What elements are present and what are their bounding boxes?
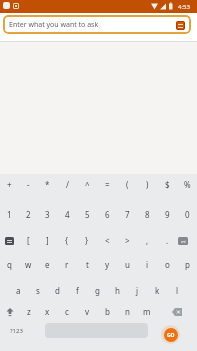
button[interactable]: < — [97, 230, 117, 251]
staticText: t — [86, 259, 89, 270]
button[interactable]: f — [67, 280, 87, 301]
button[interactable] — [0, 230, 19, 251]
staticText: [ — [27, 235, 30, 246]
button[interactable]: n — [117, 301, 137, 322]
button[interactable]: GO — [164, 328, 178, 342]
button[interactable]: 6 — [97, 204, 117, 225]
button[interactable]: q — [0, 254, 19, 275]
button[interactable] — [176, 21, 185, 30]
staticText: % — [184, 179, 191, 190]
button[interactable]: i — [137, 254, 157, 275]
button[interactable]: s — [28, 280, 47, 301]
staticText: * — [45, 179, 50, 190]
button[interactable]: ] — [38, 230, 57, 251]
button[interactable]: [ — [19, 230, 38, 251]
staticText: d — [55, 285, 60, 296]
button[interactable]: 4 — [57, 204, 77, 225]
button[interactable]: w — [19, 254, 38, 275]
button[interactable]: ) — [137, 174, 157, 195]
button[interactable]: m — [137, 301, 157, 322]
staticText: , — [146, 235, 149, 246]
button[interactable]: 9 — [157, 204, 177, 225]
button[interactable]: g — [87, 280, 107, 301]
button[interactable]: c — [57, 301, 77, 322]
button[interactable]: > — [117, 230, 137, 251]
staticText: ] — [46, 235, 49, 246]
button[interactable]: x — [38, 301, 57, 322]
staticText: h — [115, 285, 120, 296]
button[interactable]: d — [47, 280, 67, 301]
button[interactable]: = — [97, 174, 117, 195]
staticText: ) — [146, 179, 149, 190]
button[interactable]: =< — [177, 230, 197, 251]
button[interactable]: p — [177, 254, 197, 275]
button[interactable]: v — [77, 301, 97, 322]
staticText: i — [146, 259, 149, 270]
button[interactable]: b — [97, 301, 117, 322]
button[interactable]: r — [57, 254, 77, 275]
staticText: f — [76, 285, 79, 296]
button[interactable]: . — [157, 230, 177, 251]
staticText: 8 — [145, 209, 150, 220]
button[interactable]: 0 — [177, 204, 197, 225]
button[interactable]: ( — [117, 174, 137, 195]
button[interactable]: 8 — [137, 204, 157, 225]
staticText: 3 — [45, 209, 50, 220]
staticText: 4:53 — [178, 3, 190, 11]
staticText: q — [7, 259, 12, 270]
staticText: x — [45, 306, 50, 317]
staticText: + — [7, 179, 12, 190]
button[interactable]: y — [97, 254, 117, 275]
staticText: 0 — [185, 209, 190, 220]
staticText: = — [105, 179, 110, 190]
staticText: g — [95, 285, 100, 296]
staticText: y — [105, 259, 110, 270]
button[interactable]: } — [77, 230, 97, 251]
button[interactable]: l — [167, 280, 187, 301]
button[interactable]: , — [137, 230, 157, 251]
button[interactable]: t — [77, 254, 97, 275]
button[interactable]: Enter what you want to ask — [3, 15, 191, 34]
staticText: 4 — [65, 209, 70, 220]
button[interactable]: k — [147, 280, 167, 301]
button[interactable]: / — [57, 174, 77, 195]
staticText: - — [27, 179, 30, 190]
staticText: e — [45, 259, 50, 270]
staticText: 9 — [165, 209, 170, 220]
staticText: p — [185, 259, 190, 270]
button[interactable]: - — [19, 174, 38, 195]
button[interactable]: 3 — [38, 204, 57, 225]
staticText: 6 — [105, 209, 110, 220]
button[interactable]: 1 — [0, 204, 19, 225]
button[interactable]: j — [127, 280, 147, 301]
button[interactable]: 2 — [19, 204, 38, 225]
staticText: ^ — [85, 179, 90, 190]
staticText: < — [105, 235, 110, 246]
button[interactable]: $ — [157, 174, 177, 195]
staticText: w — [25, 259, 32, 270]
staticText: u — [125, 259, 130, 270]
staticText: o — [165, 259, 170, 270]
button[interactable]: e — [38, 254, 57, 275]
staticText: s — [36, 285, 40, 296]
button[interactable]: a — [9, 280, 28, 301]
button[interactable]: ?123 — [0, 321, 32, 340]
button[interactable]: * — [38, 174, 57, 195]
button[interactable]: % — [177, 174, 197, 195]
button[interactable] — [0, 301, 19, 322]
button[interactable]: ^ — [77, 174, 97, 195]
staticText: } — [85, 235, 89, 246]
staticText: l — [176, 285, 179, 296]
button[interactable]: { — [57, 230, 77, 251]
button[interactable]: o — [157, 254, 177, 275]
staticText: 1 — [7, 209, 12, 220]
button[interactable]: 7 — [117, 204, 137, 225]
staticText: k — [155, 285, 160, 296]
button[interactable]: u — [117, 254, 137, 275]
button[interactable]: z — [19, 301, 38, 322]
button[interactable]: 5 — [77, 204, 97, 225]
button[interactable]: h — [107, 280, 127, 301]
button[interactable]: + — [0, 174, 19, 195]
button[interactable] — [167, 301, 187, 322]
